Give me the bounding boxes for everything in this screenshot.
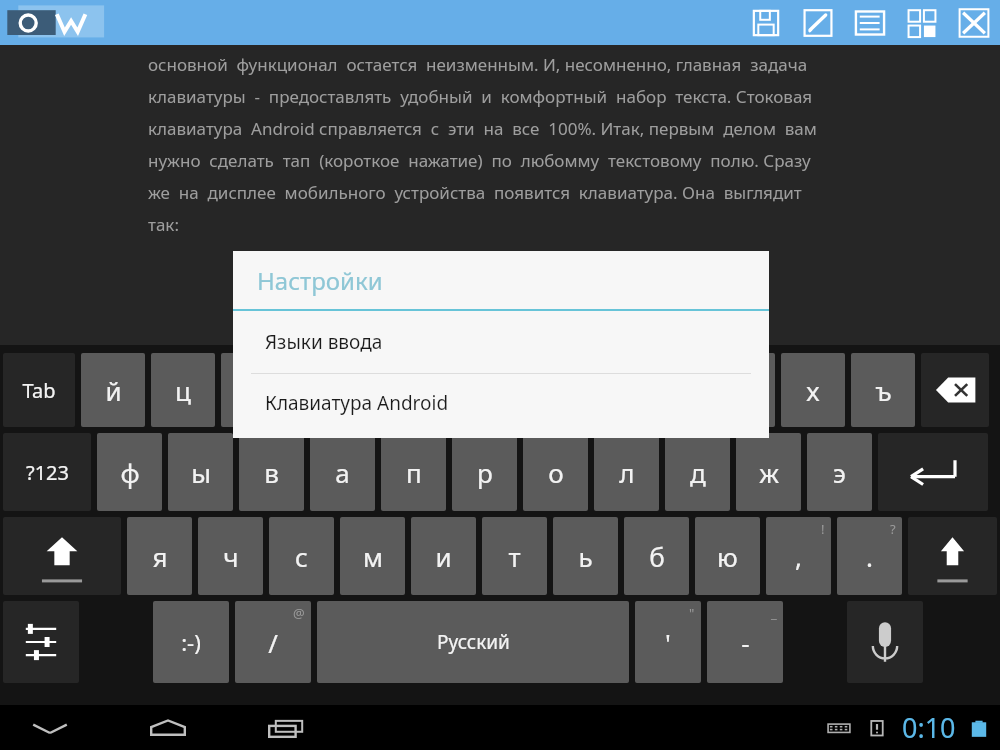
staticText: в: [264, 455, 279, 490]
button[interactable]: а: [310, 433, 375, 511]
staticText: ": [689, 604, 695, 622]
staticText: у: [246, 373, 260, 408]
button[interactable]: у: [221, 353, 285, 427]
button[interactable]: т: [482, 517, 547, 595]
staticText: а: [335, 455, 350, 490]
staticText: клавиатура Android справляется с эти на …: [148, 117, 817, 140]
button[interactable]: п: [381, 433, 446, 511]
button[interactable]: ': [635, 601, 701, 683]
button[interactable]: ,: [766, 517, 831, 595]
staticText: :-): [181, 627, 201, 657]
button[interactable]: х: [781, 353, 845, 427]
button[interactable]: о: [523, 433, 588, 511]
button[interactable]: [3, 517, 121, 595]
staticText: о: [548, 455, 564, 490]
staticText: !: [821, 520, 825, 538]
button[interactable]: Save: [750, 7, 782, 39]
button[interactable]: л: [594, 433, 659, 511]
button[interactable]: Grid: [906, 7, 938, 39]
staticText: @: [293, 604, 305, 622]
staticText: ': [665, 625, 671, 660]
button[interactable]: ц: [151, 353, 215, 427]
staticText: з: [737, 373, 750, 408]
button[interactable]: к: [291, 353, 355, 427]
staticText: нужно сделать тап (короткое нажатие) по …: [148, 149, 811, 172]
button[interactable]: App logo: [4, 3, 114, 43]
button[interactable]: Tab: [3, 353, 75, 427]
button[interactable]: и: [411, 517, 476, 595]
button[interactable]: н: [431, 353, 495, 427]
button[interactable]: щ: [641, 353, 705, 427]
staticText: _: [771, 604, 777, 622]
staticText: Языки ввода: [265, 329, 383, 355]
staticText: ю: [717, 539, 738, 574]
button[interactable]: [908, 517, 997, 595]
staticText: д: [690, 455, 706, 490]
staticText: Клавиатура Android: [265, 390, 449, 416]
button[interactable]: ж: [736, 433, 801, 511]
staticText: с: [295, 539, 308, 574]
button[interactable]: :-): [153, 601, 229, 683]
staticText: й: [105, 373, 122, 408]
button[interactable]: ч: [198, 517, 263, 595]
button[interactable]: м: [340, 517, 405, 595]
button[interactable]: я: [127, 517, 192, 595]
staticText: ш: [591, 373, 615, 408]
button[interactable]: д: [665, 433, 730, 511]
staticText: к: [316, 373, 330, 408]
staticText: .: [866, 539, 873, 574]
staticText: л: [619, 455, 635, 490]
button[interactable]: List: [854, 7, 886, 39]
staticText: и: [435, 539, 452, 574]
staticText: ц: [175, 373, 191, 408]
button[interactable]: ъ: [851, 353, 915, 427]
staticText: Настройки: [257, 264, 383, 297]
staticText: м: [363, 539, 383, 574]
button[interactable]: [3, 601, 79, 683]
staticText: т: [508, 539, 521, 574]
staticText: ы: [191, 455, 211, 490]
button[interactable]: ш: [571, 353, 635, 427]
staticText: же на дисплее мобильного устройства появ…: [148, 181, 802, 204]
staticText: Tab: [22, 377, 56, 404]
button[interactable]: ?123: [3, 433, 91, 511]
button[interactable]: з: [711, 353, 775, 427]
button[interactable]: ф: [97, 433, 162, 511]
button[interactable]: Hide keyboard: [20, 707, 80, 749]
button[interactable]: /: [235, 601, 311, 683]
button[interactable]: в: [239, 433, 304, 511]
staticText: ч: [223, 539, 239, 574]
button[interactable]: ь: [553, 517, 618, 595]
button[interactable]: с: [269, 517, 334, 595]
staticText: б: [649, 539, 665, 574]
button[interactable]: е: [361, 353, 425, 427]
button[interactable]: э: [807, 433, 872, 511]
button[interactable]: г: [501, 353, 565, 427]
button[interactable]: [847, 601, 923, 683]
staticText: ь: [578, 539, 593, 574]
staticText: /: [268, 625, 278, 660]
staticText: ?123: [26, 459, 69, 486]
button[interactable]: Русский: [317, 601, 629, 683]
button[interactable]: .: [837, 517, 902, 595]
button[interactable]: р: [452, 433, 517, 511]
staticText: я: [152, 539, 168, 574]
button[interactable]: ы: [168, 433, 233, 511]
staticText: э: [833, 455, 846, 490]
button[interactable]: [878, 433, 988, 511]
button[interactable]: Close: [958, 7, 990, 39]
staticText: -: [741, 625, 750, 660]
button[interactable]: ю: [695, 517, 760, 595]
button[interactable]: Клавиатура Android: [233, 374, 769, 438]
staticText: щ: [661, 373, 685, 408]
button[interactable]: -: [707, 601, 783, 683]
button[interactable]: Home: [138, 707, 198, 749]
button[interactable]: Языки ввода: [233, 311, 769, 373]
button[interactable]: Edit: [802, 7, 834, 39]
button[interactable]: б: [624, 517, 689, 595]
staticText: х: [806, 373, 820, 408]
button[interactable]: Recents: [256, 707, 316, 749]
button[interactable]: [921, 353, 989, 427]
button[interactable]: й: [81, 353, 145, 427]
staticText: г: [527, 373, 539, 408]
